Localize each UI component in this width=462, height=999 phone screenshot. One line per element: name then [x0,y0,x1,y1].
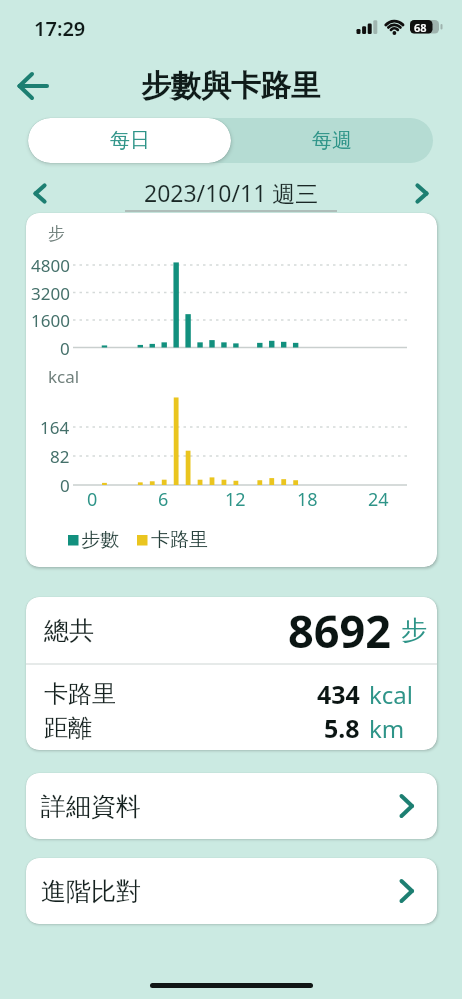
staticText: 總共 [44,615,94,646]
staticText: 68 [414,20,427,35]
staticText: 詳細資料 [41,791,141,822]
staticText: 距離 [44,713,92,743]
staticText: 82 [50,445,70,467]
staticText: 5.8 [324,711,360,745]
button[interactable]: 進階比對 [26,858,437,924]
staticText: 2023/10/11 週三 [144,177,319,208]
staticText: 進階比對 [41,876,141,907]
staticText: 步數與卡路里 [141,67,321,105]
staticText: 步數 [81,528,119,552]
staticText: kcal [48,365,80,388]
staticText: 17:29 [34,15,86,42]
staticText: 1600 [31,309,70,331]
staticText: 8692 [288,600,391,661]
staticText: kcal [369,678,413,711]
staticText: 卡路里 [44,679,116,709]
staticText: 4800 [31,254,70,276]
staticText: 12 [225,487,246,509]
staticText: 18 [297,487,318,509]
staticText: 24 [368,487,389,509]
staticText: 434 [317,677,360,711]
staticText: 步 [48,223,65,244]
button[interactable] [10,64,56,108]
staticText: 0 [60,474,70,496]
staticText: 6 [158,487,169,509]
staticText: 每日 [110,128,150,153]
staticText: 0 [87,487,98,509]
staticText: 3200 [31,282,70,304]
staticText: 卡路里 [151,528,208,552]
staticText: 164 [40,416,70,438]
button[interactable] [24,177,56,209]
button[interactable] [406,177,438,209]
staticText: km [369,712,405,745]
staticText: 0 [60,337,70,359]
staticText: 每週 [312,128,352,153]
staticText: 步 [401,614,427,647]
button[interactable]: 每週 [230,118,433,163]
button[interactable]: 每日 [28,118,231,163]
button[interactable]: 詳細資料 [26,773,437,839]
